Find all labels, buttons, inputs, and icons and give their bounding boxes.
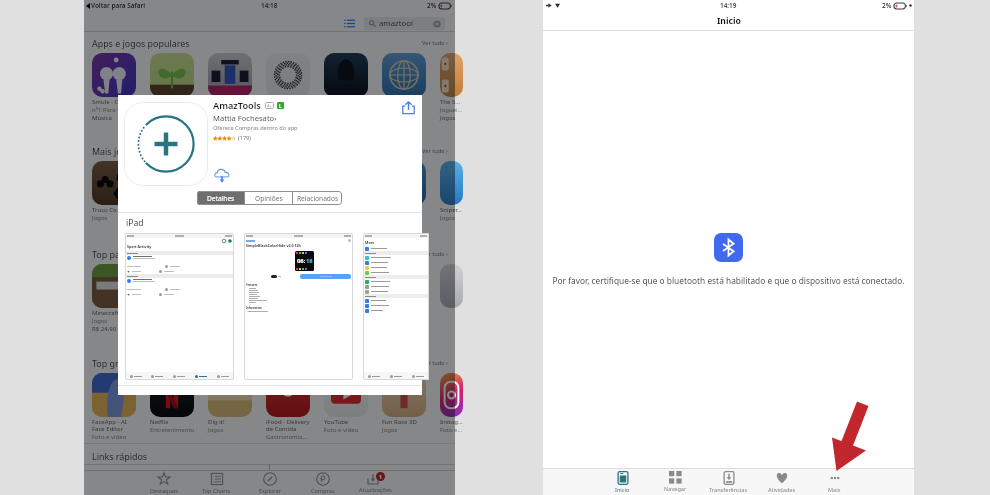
staticText: Ver tudo › (422, 250, 448, 258)
staticText: Foto e vídeo (324, 426, 359, 434)
staticText: 1 (379, 473, 382, 480)
staticText: Opiniões (255, 194, 283, 203)
button[interactable]: Baixar (212, 165, 232, 185)
staticText: Relacionados (297, 194, 339, 203)
staticText: Transferências (709, 486, 748, 494)
staticText: Jogos (382, 426, 398, 434)
staticText: The S... (440, 98, 461, 106)
staticText: Jogos (92, 317, 108, 325)
button[interactable]: Navegar (649, 469, 702, 495)
staticText: Joguei... (440, 106, 463, 114)
staticText: Top gratuitos (92, 357, 148, 369)
staticText: Jogos (440, 214, 456, 222)
button[interactable]: Compartilhar (399, 98, 417, 116)
staticText: Features (246, 283, 258, 287)
staticText: Top Charts (202, 487, 231, 495)
staticText: Foto e... (440, 426, 463, 434)
staticText: YouTube (324, 418, 349, 426)
staticText: Hole.io (266, 98, 286, 106)
staticText: Inicio (717, 15, 741, 27)
staticText: Ver tudo › (422, 359, 448, 367)
staticText: Sniper... (440, 206, 462, 214)
staticText: 2% (882, 1, 892, 10)
staticText: nº1 Para v... (92, 106, 125, 114)
staticText: Oferece Compras dentro do app (213, 124, 298, 132)
staticText: Inicio (615, 486, 630, 494)
staticText: Jogos (92, 214, 108, 222)
staticText: Navegar (664, 485, 687, 493)
staticText: FaceApp - AI Face Editor (92, 418, 127, 433)
staticText: (179) (238, 134, 251, 142)
button[interactable]: Atividades (755, 469, 808, 495)
staticText: iPad (126, 217, 144, 229)
button[interactable]: Detalhes (197, 191, 244, 205)
staticText: Detalhes (207, 194, 235, 203)
staticText: 8 Ball... (382, 206, 403, 214)
button[interactable]: 1 (349, 471, 402, 495)
staticText: Truco Co... (92, 206, 122, 214)
staticText: 4+ (267, 103, 272, 109)
staticText: 14:19 (720, 1, 737, 10)
staticText: iFood - Delivery de Comida (266, 418, 310, 433)
staticText: Minecraft (92, 309, 119, 317)
staticText: Information (246, 306, 262, 310)
staticText: Afterli... (382, 309, 404, 317)
button[interactable]: Destaques (137, 471, 190, 495)
staticText: AmazTools (213, 99, 261, 112)
button[interactable]: Mais (808, 469, 861, 495)
staticText: Fun Race 3D (382, 418, 417, 426)
button[interactable]: Transferências (702, 469, 755, 495)
staticText: Smule - C... (92, 98, 124, 106)
staticText: Top pagos (92, 248, 136, 260)
staticText: Gastronomia... (266, 433, 308, 441)
staticText: Jogos (266, 106, 282, 114)
staticText: Música (92, 114, 112, 122)
staticText: More (365, 240, 375, 245)
staticText: R$ 24,90 (92, 325, 117, 333)
staticText: Jogos (208, 426, 224, 434)
staticText: Mais (828, 486, 841, 494)
staticText: Atividades (768, 486, 796, 494)
staticText: Compras (311, 487, 335, 495)
staticText: Jogos (208, 106, 224, 114)
staticText: Mais jogos para você (92, 145, 180, 157)
button[interactable]: Opiniões (245, 191, 292, 205)
staticText: Ver tudo › (422, 39, 448, 47)
staticText: Links rápidos (92, 450, 148, 462)
staticText: 18 (306, 257, 313, 265)
staticText: Instag... (440, 418, 463, 426)
staticText: Entretenimento (150, 426, 195, 434)
staticText: SimpleBlackColorHide v2.0 12h (246, 243, 301, 248)
staticText: Atualizações (359, 486, 392, 494)
staticText: Mattia Fochesato› (213, 113, 277, 123)
button[interactable]: Inicio (596, 469, 649, 495)
staticText: Por favor, certifique-se que o bluetooth… (552, 275, 905, 286)
staticText: Apps e jogos populares (92, 37, 190, 49)
staticText: Explorar (259, 487, 281, 495)
staticText: L (279, 103, 282, 109)
staticText: 06: (297, 257, 306, 265)
staticText: 2% (427, 1, 437, 10)
staticText: Sport Activity (127, 244, 152, 249)
staticText: Jogos (440, 114, 456, 122)
staticText: Voltar para Safari (91, 1, 146, 10)
staticText: amaztool (379, 18, 413, 29)
staticText: Netflix (150, 418, 169, 426)
staticText: Plant Nanny (150, 98, 185, 106)
staticText: Ver tudo › (422, 147, 448, 155)
staticText: Destaques (150, 487, 178, 495)
button[interactable]: Compras (296, 471, 349, 495)
staticText: Utilitários (382, 106, 410, 114)
staticText: Foto e vídeo (92, 433, 127, 441)
button[interactable]: Top Charts (190, 471, 243, 495)
button[interactable]: Relacionados (293, 191, 342, 205)
staticText: Dig it! (208, 418, 225, 426)
button[interactable]: Explorar (243, 471, 296, 495)
staticText: Opera Touch (382, 98, 418, 106)
